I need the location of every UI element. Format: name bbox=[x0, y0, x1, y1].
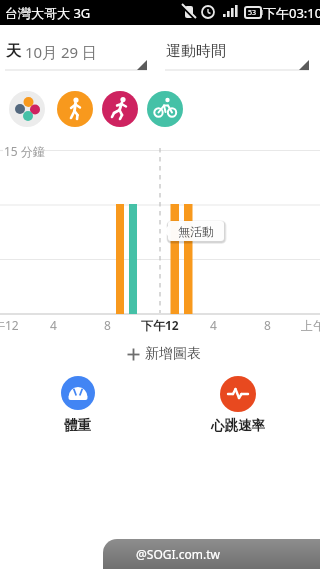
staticText: 心跳速率 bbox=[211, 417, 265, 434]
staticText: 下午03:10 bbox=[263, 4, 320, 22]
button[interactable]: 天 bbox=[0, 25, 152, 75]
staticText: 上午12 bbox=[301, 317, 320, 333]
staticText: 下午12 bbox=[141, 317, 179, 333]
staticText: @SOGI.com.tw bbox=[136, 546, 220, 562]
button[interactable] bbox=[61, 376, 95, 410]
button[interactable] bbox=[57, 91, 93, 127]
staticText: 4 bbox=[50, 317, 57, 333]
button[interactable] bbox=[147, 91, 183, 127]
staticText: 上午12 bbox=[0, 317, 19, 333]
staticText: 8 bbox=[104, 317, 111, 333]
staticText: 無活動 bbox=[178, 224, 214, 239]
button[interactable]: 運動時間 bbox=[160, 25, 312, 75]
staticText: 台灣大哥大 3G bbox=[5, 4, 91, 22]
staticText: 10月 29 日 bbox=[21, 42, 98, 62]
staticText: 4 bbox=[210, 317, 217, 333]
staticText: 天 bbox=[6, 42, 21, 61]
staticText: 新增圖表 bbox=[145, 345, 201, 363]
staticText: 運動時間 bbox=[166, 42, 226, 61]
staticText: 15 分鐘 bbox=[4, 143, 45, 159]
button[interactable] bbox=[9, 91, 45, 127]
button[interactable] bbox=[102, 91, 138, 127]
staticText: 53 bbox=[248, 8, 257, 18]
staticText: 體重 bbox=[64, 417, 91, 434]
staticText: 8 bbox=[264, 317, 271, 333]
button[interactable] bbox=[220, 376, 256, 412]
button[interactable]: 新增圖表 bbox=[127, 343, 201, 365]
